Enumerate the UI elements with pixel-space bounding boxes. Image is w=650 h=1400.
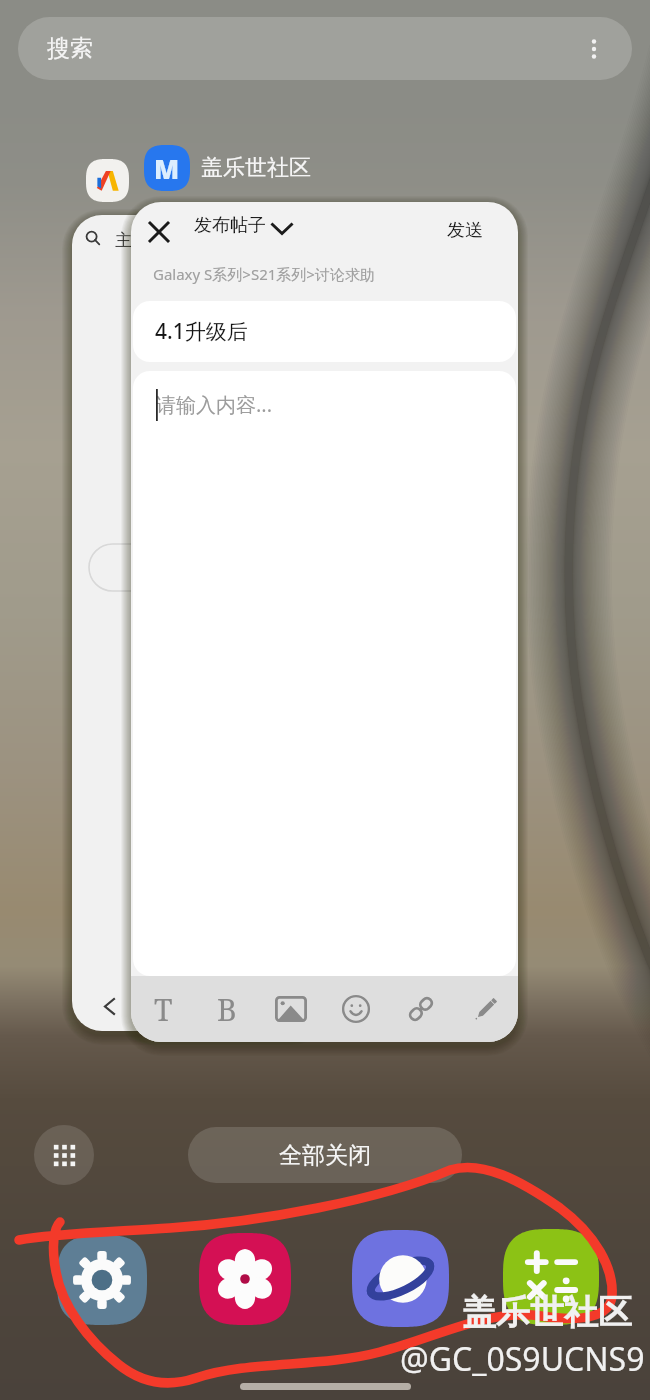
button[interactable]: Insert image — [259, 976, 323, 1042]
staticText: 盖乐世社区 — [462, 1291, 632, 1334]
staticText: M — [154, 151, 180, 186]
button[interactable]: Bold — [195, 976, 259, 1042]
button[interactable]: Text style — [131, 976, 195, 1042]
button[interactable]: Draw — [453, 976, 518, 1042]
button[interactable]: 4.1升级后 — [133, 301, 516, 362]
staticText: @GC_0S9UCNS9 — [400, 1337, 645, 1381]
staticText: 搜索 — [47, 34, 93, 63]
button[interactable]: 全部关闭 — [188, 1127, 462, 1183]
button[interactable]: More options — [574, 29, 614, 69]
button[interactable]: Close — [131, 202, 518, 1042]
button[interactable]: M — [144, 145, 311, 191]
button[interactable]: Gallery — [199, 1233, 291, 1325]
button[interactable]: 主页 — [72, 215, 322, 1031]
button[interactable]: Internet — [352, 1230, 449, 1327]
button[interactable]: Change board — [261, 208, 303, 250]
button[interactable]: Samsung Members — [86, 159, 129, 202]
button[interactable]: Insert link — [388, 976, 453, 1042]
button[interactable]: Close — [137, 210, 181, 254]
staticText: 主页 — [115, 230, 149, 251]
staticText: 发送 — [447, 219, 483, 242]
button[interactable]: 发送 — [427, 206, 503, 254]
button[interactable]: Settings — [57, 1235, 147, 1325]
staticText: 4.1升级后 — [155, 317, 248, 346]
staticText: T — [154, 989, 173, 1030]
button[interactable]: Insert emoji — [323, 976, 388, 1042]
button[interactable]: App list — [34, 1125, 94, 1185]
staticText: 盖乐世社区 — [201, 154, 311, 182]
staticText: 全部关闭 — [279, 1141, 371, 1170]
staticText: 发布帖子 — [194, 214, 266, 237]
button[interactable]: Calculator — [503, 1229, 599, 1325]
staticText: B — [217, 989, 237, 1030]
staticText: 请输入内容... — [156, 391, 273, 418]
button[interactable]: 请输入内容... — [133, 371, 516, 976]
button[interactable]: 搜索 — [18, 17, 632, 80]
staticText: Galaxy S系列>S21系列>讨论求助 — [153, 264, 375, 284]
